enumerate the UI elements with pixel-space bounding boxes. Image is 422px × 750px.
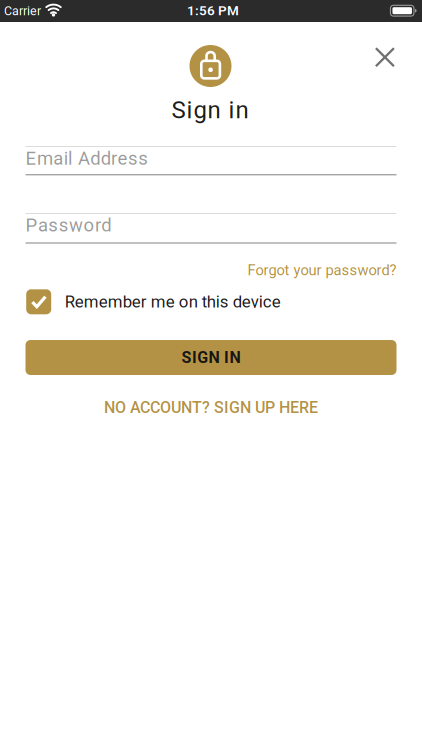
button[interactable]: Email Address: [25, 144, 396, 172]
staticText: Forgot your password?: [247, 262, 396, 279]
staticText: SIGN IN: [182, 348, 240, 367]
button[interactable]: Remember me on this device: [26, 289, 281, 314]
staticText: Sign in: [171, 96, 248, 124]
staticText: Password: [25, 214, 111, 236]
staticText: 1:56 PM: [187, 3, 239, 18]
button[interactable]: Forgot your password?: [247, 262, 396, 279]
button[interactable]: SIGN IN: [25, 340, 396, 375]
button[interactable]: Close: [371, 44, 398, 71]
button[interactable]: Password: [25, 211, 396, 239]
staticText: NO ACCOUNT? SIGN UP HERE: [104, 398, 318, 417]
staticText: Remember me on this device: [65, 292, 281, 312]
staticText: Email Address: [25, 148, 148, 169]
button[interactable]: NO ACCOUNT? SIGN UP HERE: [104, 398, 318, 417]
staticText: Carrier: [4, 4, 41, 18]
